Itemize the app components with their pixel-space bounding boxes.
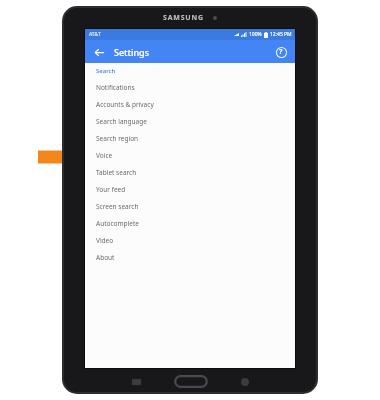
staticText: Your feed xyxy=(96,185,126,194)
staticText: Video xyxy=(96,236,114,245)
staticText: SAMSUNG xyxy=(163,13,204,23)
button[interactable]: Search region xyxy=(85,130,295,147)
staticText: About xyxy=(96,253,115,262)
staticText: Tablet search xyxy=(96,168,137,177)
button[interactable]: Video xyxy=(85,232,295,249)
staticText: Search language xyxy=(96,117,147,126)
button[interactable]: Screen search xyxy=(85,198,295,215)
staticText: 12:45 PM xyxy=(270,31,292,38)
button[interactable]: Notifications xyxy=(85,79,295,96)
staticText: Autocomplete xyxy=(96,219,139,228)
staticText: Search xyxy=(96,67,116,75)
staticText: 100% xyxy=(249,31,262,38)
staticText: Screen search xyxy=(96,202,139,211)
button[interactable]: About xyxy=(85,249,295,266)
button[interactable]: Tablet search xyxy=(85,164,295,181)
button[interactable]: Back xyxy=(241,378,249,386)
staticText: Notifications xyxy=(96,83,135,92)
button[interactable]: Help xyxy=(273,44,289,60)
staticText: AT&T xyxy=(89,31,101,38)
staticText: Accounts & privacy xyxy=(96,100,154,109)
button[interactable]: Home xyxy=(174,375,208,388)
button[interactable]: Navigate up xyxy=(91,44,107,60)
button[interactable]: Search language xyxy=(85,113,295,130)
button[interactable]: Voice xyxy=(85,147,295,164)
staticText: Search region xyxy=(96,134,139,143)
button[interactable]: Autocomplete xyxy=(85,215,295,232)
staticText: ? xyxy=(279,47,283,57)
staticText: Voice xyxy=(96,151,113,160)
staticText: Settings xyxy=(114,46,150,58)
button[interactable]: Accounts & privacy xyxy=(85,96,295,113)
button[interactable]: Your feed xyxy=(85,181,295,198)
